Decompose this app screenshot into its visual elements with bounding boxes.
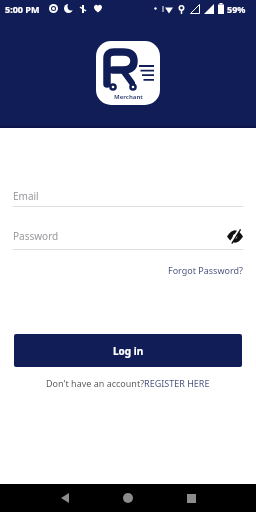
staticText: Merchant	[114, 93, 143, 101]
staticText: 5:00 PM	[5, 3, 40, 15]
staticText: Log in	[113, 344, 144, 358]
button[interactable]: Log in	[14, 334, 242, 367]
button[interactable]	[227, 230, 243, 243]
button[interactable]	[47, 484, 83, 512]
button[interactable]: Don't have an account?REGISTER HERE	[0, 377, 256, 389]
staticText: 59%	[227, 3, 246, 15]
button[interactable]: Forgot Password?	[168, 264, 243, 276]
staticText: Forgot Password?	[168, 264, 243, 276]
button[interactable]	[110, 484, 146, 512]
button[interactable]	[173, 484, 209, 512]
staticText: Don't have an account?REGISTER HERE	[46, 377, 210, 389]
button[interactable]: Password	[13, 229, 243, 250]
button[interactable]: Email	[13, 189, 243, 207]
staticText: Password	[13, 229, 59, 243]
staticText: Email	[13, 189, 39, 203]
